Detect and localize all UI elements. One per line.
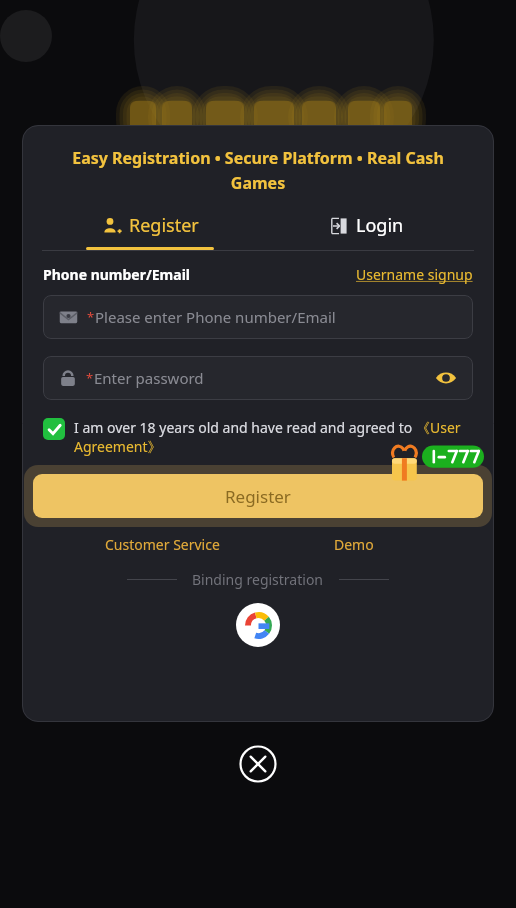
staticText: Phone number/Email (43, 265, 190, 284)
staticText: Agreement》 (74, 437, 162, 456)
button[interactable]: * (43, 295, 473, 339)
staticText: Please enter Phone number/Email (95, 307, 336, 327)
staticText: * (86, 369, 94, 387)
staticText: Easy Registration • Secure Platform • Re… (48, 147, 468, 193)
staticText: I am over 18 years old and have read and… (74, 418, 416, 437)
staticText: Register (129, 213, 199, 238)
button[interactable]: Demo (330, 531, 378, 558)
other: Gift bonus 1-777 (390, 443, 486, 483)
staticText: * (87, 308, 95, 326)
staticText: 《User (416, 418, 461, 437)
button[interactable]: Register (42, 213, 258, 250)
button[interactable]: Username signup (356, 265, 473, 284)
button[interactable]: Close (238, 744, 278, 784)
button[interactable]: Sign in with Google (236, 603, 280, 647)
staticText: Login (356, 213, 404, 238)
button[interactable]: * (43, 356, 473, 400)
staticText: Register (225, 485, 291, 508)
button[interactable]: Register (24, 465, 492, 527)
button[interactable]: Agree checkbox (43, 418, 65, 440)
button[interactable]: Customer Service (101, 531, 224, 558)
button[interactable]: Agreement》 (74, 437, 162, 456)
staticText: Binding registration (192, 570, 324, 589)
button[interactable]: Login (258, 213, 474, 250)
staticText: Username signup (356, 265, 473, 284)
button[interactable]: 《User (416, 418, 461, 437)
button[interactable]: Show password (433, 365, 459, 391)
staticText: Enter password (94, 368, 204, 388)
staticText: Demo (334, 535, 374, 554)
staticText: Customer Service (105, 535, 220, 554)
